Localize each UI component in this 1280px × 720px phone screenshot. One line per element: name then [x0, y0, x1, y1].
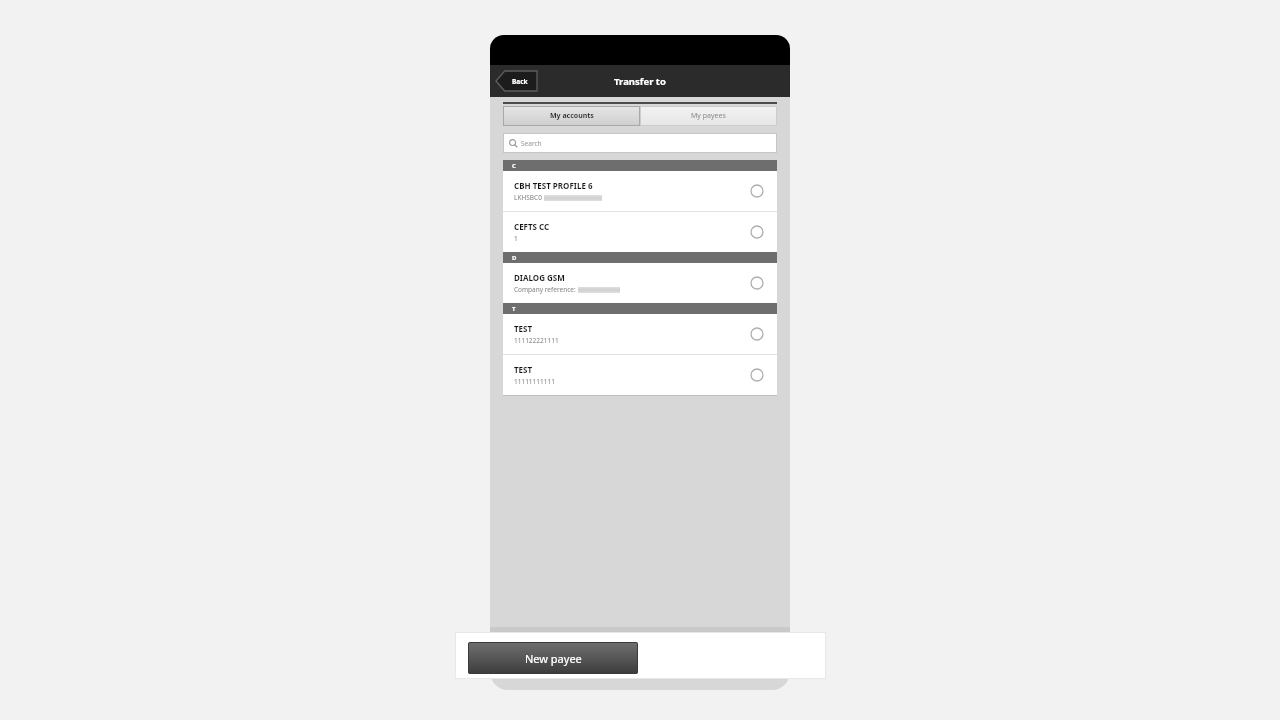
- button[interactable]: CBH TEST PROFILE 6: [503, 171, 777, 211]
- staticText: New payee: [525, 651, 582, 666]
- button[interactable]: CEFTS CC: [503, 212, 777, 252]
- staticText: Company reference:: [514, 285, 576, 294]
- staticText: My payees: [691, 111, 726, 121]
- button[interactable]: DIALOG GSM: [503, 263, 777, 303]
- staticText: LKHSBC0: [514, 193, 542, 202]
- staticText: Transfer to: [614, 75, 666, 88]
- staticText: Back: [512, 77, 528, 86]
- staticText: Search: [521, 139, 542, 148]
- staticText: T: [512, 305, 516, 313]
- staticText: CBH TEST PROFILE 6: [514, 180, 593, 191]
- button[interactable]: My accounts: [503, 106, 640, 126]
- staticText: DIALOG GSM: [514, 272, 565, 283]
- button[interactable]: New payee: [468, 642, 638, 674]
- button[interactable]: My payees: [640, 106, 777, 126]
- button[interactable]: TEST: [503, 355, 777, 395]
- button[interactable]: Search: [503, 133, 777, 153]
- staticText: D: [512, 254, 517, 262]
- staticText: 11111111111: [514, 377, 555, 386]
- staticText: C: [512, 162, 516, 170]
- staticText: My accounts: [550, 111, 594, 121]
- staticText: 111122221111: [514, 336, 559, 345]
- button[interactable]: Back: [495, 70, 539, 92]
- staticText: TEST: [514, 323, 533, 334]
- button[interactable]: TEST: [503, 314, 777, 354]
- staticText: CEFTS CC: [514, 221, 550, 232]
- staticText: 1: [514, 234, 518, 243]
- staticText: TEST: [514, 364, 533, 375]
